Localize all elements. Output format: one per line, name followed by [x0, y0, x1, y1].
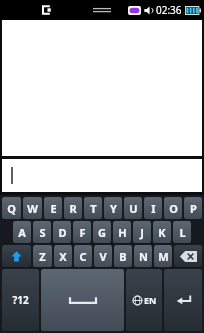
button[interactable]: T — [84, 197, 102, 219]
button[interactable]: U — [124, 197, 142, 219]
button[interactable]: M — [154, 245, 172, 267]
button[interactable]: Enter — [164, 269, 202, 331]
staticText: Y — [110, 201, 117, 216]
button[interactable]: W — [23, 197, 42, 219]
button[interactable]: D — [53, 221, 71, 243]
staticText: Z — [39, 249, 46, 264]
button[interactable]: N — [134, 245, 152, 267]
button[interactable]: Backspace — [174, 245, 202, 267]
button[interactable]: J — [133, 221, 151, 243]
staticText: H — [118, 225, 127, 240]
button[interactable]: H — [113, 221, 131, 243]
staticText: V — [99, 249, 107, 264]
staticText: T — [90, 201, 97, 216]
staticText: S — [39, 225, 46, 240]
button[interactable]: Y — [104, 197, 122, 219]
staticText: ?12 — [12, 293, 29, 307]
button[interactable]: K — [153, 221, 171, 243]
button[interactable]: S — [33, 221, 51, 243]
button[interactable] — [2, 159, 202, 192]
button[interactable]: P — [184, 197, 202, 219]
button[interactable]: X — [54, 245, 72, 267]
button[interactable]: R — [64, 197, 82, 219]
staticText: A — [18, 225, 26, 240]
button[interactable]: L — [173, 221, 191, 243]
button[interactable]: G — [93, 221, 111, 243]
button[interactable]: ?12 — [2, 269, 39, 331]
staticText: EN — [144, 294, 157, 306]
button[interactable]: A — [13, 221, 31, 243]
staticText: E — [50, 201, 57, 216]
staticText: W — [27, 201, 38, 216]
staticText: Q — [7, 201, 16, 216]
staticText: M — [158, 249, 169, 264]
staticText: C — [79, 249, 87, 264]
button[interactable]: O — [164, 197, 182, 219]
button[interactable]: V — [94, 245, 112, 267]
staticText: R — [69, 201, 77, 216]
staticText: O — [169, 201, 178, 216]
staticText: I — [151, 201, 156, 216]
staticText: X — [59, 249, 67, 264]
staticText: G — [98, 225, 106, 240]
button[interactable]: E — [44, 197, 62, 219]
button[interactable]: F — [73, 221, 91, 243]
button[interactable]: Q — [2, 197, 21, 219]
staticText: L — [179, 225, 186, 240]
button[interactable]: Language EN — [126, 269, 162, 331]
button[interactable]: Shift — [2, 245, 31, 267]
staticText: P — [190, 201, 197, 216]
staticText: J — [140, 225, 144, 240]
button[interactable]: Z — [33, 245, 52, 267]
button[interactable]: I — [144, 197, 162, 219]
staticText: N — [139, 249, 148, 264]
staticText: K — [158, 225, 166, 240]
staticText: B — [119, 249, 127, 264]
staticText: D — [58, 225, 67, 240]
button[interactable]: B — [114, 245, 132, 267]
staticText: U — [129, 201, 138, 216]
button[interactable]: Space — [41, 269, 124, 331]
button[interactable]: C — [74, 245, 92, 267]
staticText: F — [79, 225, 86, 240]
staticText: 02:36 — [156, 3, 182, 17]
